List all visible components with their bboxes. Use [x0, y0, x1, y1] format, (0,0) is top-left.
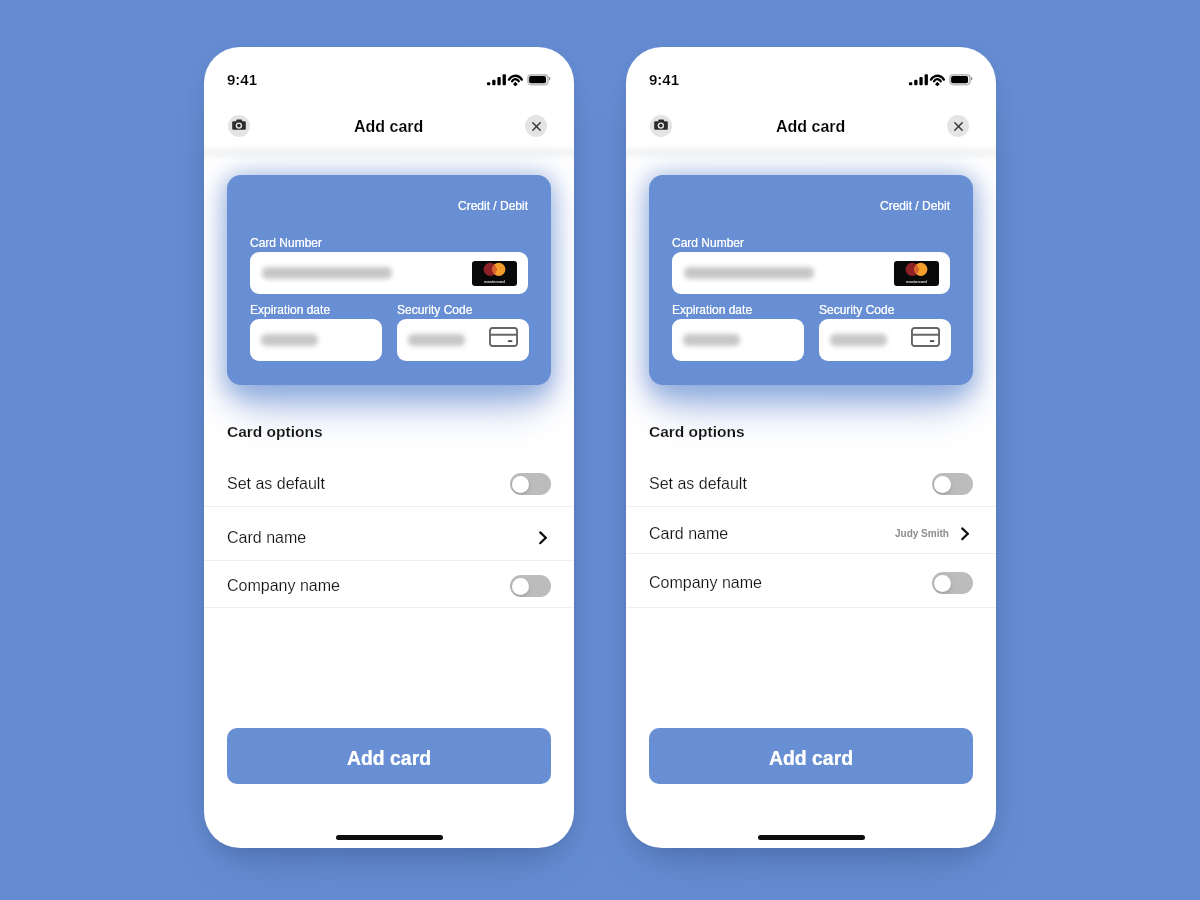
staticText: Card options: [227, 423, 323, 440]
staticText: Set as default: [227, 475, 325, 493]
button[interactable]: Company name: [204, 561, 574, 607]
staticText: Expiration date: [672, 303, 753, 316]
button[interactable]: Set as default: [204, 452, 574, 506]
button[interactable]: Close: [525, 115, 547, 137]
button[interactable]: Add card: [649, 728, 973, 784]
staticText: Security Code: [819, 303, 895, 316]
staticText: Security Code: [397, 303, 473, 316]
staticText: 9:41: [649, 71, 680, 88]
staticText: mastercard: [484, 279, 505, 284]
staticText: Card Number: [672, 236, 745, 249]
button[interactable]: Card name: [204, 507, 574, 560]
staticText: Expiration date: [250, 303, 331, 316]
staticText: Add card: [776, 118, 846, 136]
staticText: Credit / Debit: [458, 199, 529, 212]
button[interactable]: Card name: [626, 507, 996, 553]
staticText: 9:41: [227, 71, 258, 88]
staticText: Set as default: [649, 475, 747, 493]
staticText: Card Number: [250, 236, 323, 249]
staticText: mastercard: [906, 279, 927, 284]
button[interactable]: Scan card with camera: [650, 115, 672, 137]
button[interactable]: Add card: [227, 728, 551, 784]
staticText: Add card: [347, 747, 432, 769]
staticText: Card name: [649, 525, 729, 543]
button[interactable]: Company name: [626, 554, 996, 607]
staticText: Add card: [769, 747, 854, 769]
staticText: Company name: [227, 577, 340, 595]
button[interactable]: Set as default: [626, 452, 996, 506]
button[interactable]: Scan card with camera: [228, 115, 250, 137]
staticText: Add card: [354, 118, 424, 136]
button[interactable]: Close: [947, 115, 969, 137]
staticText: Credit / Debit: [880, 199, 951, 212]
staticText: Company name: [649, 574, 762, 592]
staticText: Judy Smith: [895, 528, 949, 539]
staticText: Card name: [227, 529, 307, 547]
staticText: Card options: [649, 423, 745, 440]
